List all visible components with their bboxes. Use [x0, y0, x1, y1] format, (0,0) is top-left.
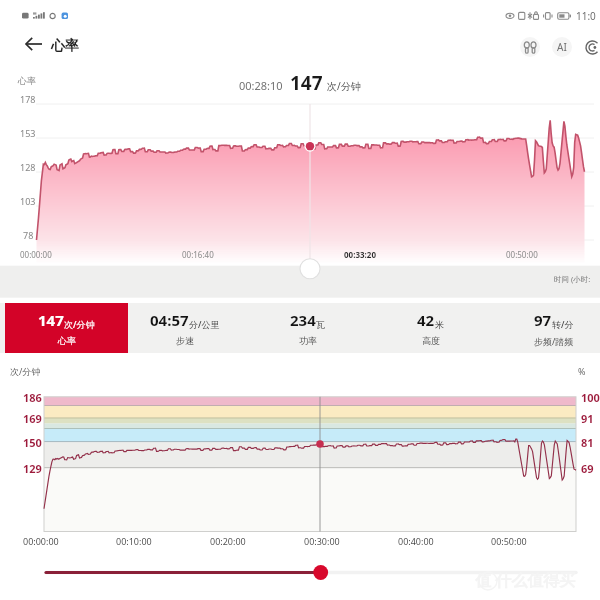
staticText: 00:10:00 [116, 535, 152, 547]
staticText: 178 [20, 93, 36, 105]
staticText: 147 [38, 310, 64, 330]
staticText: 11:0 [576, 9, 596, 23]
button[interactable]: 心率 [51, 37, 79, 55]
button[interactable]: 234 [246, 303, 369, 353]
staticText: AI [557, 40, 567, 54]
button[interactable]: AI assistant [552, 37, 572, 57]
staticText: 功率 [299, 335, 317, 346]
staticText: 129 [23, 461, 42, 476]
staticText: 值 什么值得买 [475, 569, 576, 591]
staticText: 00:16:40 [182, 249, 214, 260]
staticText: 步速 [176, 335, 194, 346]
staticText: 150 [23, 435, 42, 450]
staticText: 103 [20, 195, 36, 207]
staticText: 转/分 [552, 318, 574, 330]
staticText: 时间 (小时: [554, 274, 591, 284]
staticText: 步频/踏频 [534, 335, 574, 347]
staticText: 81 [581, 435, 594, 450]
staticText: 次/分钟 [64, 318, 95, 330]
staticText: 00:30:00 [304, 535, 340, 547]
staticText: 00:00:00 [23, 535, 59, 547]
staticText: % [578, 365, 586, 377]
button[interactable]: 147 [5, 303, 128, 353]
staticText: 147 [290, 70, 323, 96]
staticText: 97 [534, 310, 552, 330]
staticText: 次/分钟 [10, 365, 41, 377]
staticText: 100 [581, 390, 600, 405]
button[interactable]: Back [21, 33, 45, 55]
staticText: 分/公里 [189, 318, 220, 330]
staticText: 米 [435, 319, 444, 330]
button[interactable]: Pace [520, 37, 540, 57]
staticText: 169 [23, 411, 42, 426]
staticText: 04:57 [150, 310, 189, 330]
staticText: 00:50:00 [506, 249, 538, 260]
staticText: 69 [581, 461, 594, 476]
staticText: 00:20:00 [210, 535, 246, 547]
staticText: 42 [417, 310, 435, 330]
staticText: 高度 [422, 335, 440, 346]
staticText: 153 [20, 127, 36, 139]
staticText: 00:00:00 [20, 249, 52, 260]
staticText: 186 [23, 390, 42, 405]
staticText: 心率 [58, 335, 76, 346]
button[interactable]: 04:57 [123, 303, 246, 353]
staticText: 00:50:00 [491, 535, 527, 547]
staticText: 00:28:10 [239, 78, 283, 93]
staticText: 00:33:20 [344, 249, 376, 260]
staticText: 91 [581, 411, 594, 426]
staticText: 234 [290, 310, 316, 330]
staticText: 78 [23, 229, 34, 241]
staticText: 瓦 [316, 319, 325, 330]
button[interactable]: 42 [369, 303, 492, 353]
staticText: 心率 [18, 75, 36, 86]
button[interactable]: Settings [582, 37, 600, 57]
staticText: 00:40:00 [398, 535, 434, 547]
staticText: 128 [20, 161, 36, 173]
button[interactable]: 97 [492, 303, 600, 353]
staticText: 次/分钟 [327, 79, 361, 93]
